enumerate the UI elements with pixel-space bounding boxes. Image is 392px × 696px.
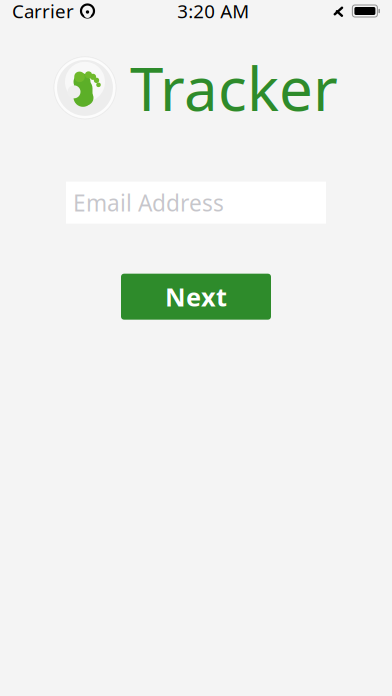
staticText: 3:20 AM — [177, 0, 249, 23]
staticText: Email Address — [73, 188, 224, 218]
staticText: Carrier — [12, 0, 74, 23]
button[interactable]: Next — [121, 274, 271, 320]
staticText: Tracker — [130, 48, 338, 128]
button[interactable]: Email Address — [66, 182, 326, 224]
staticText: Next — [165, 280, 227, 313]
